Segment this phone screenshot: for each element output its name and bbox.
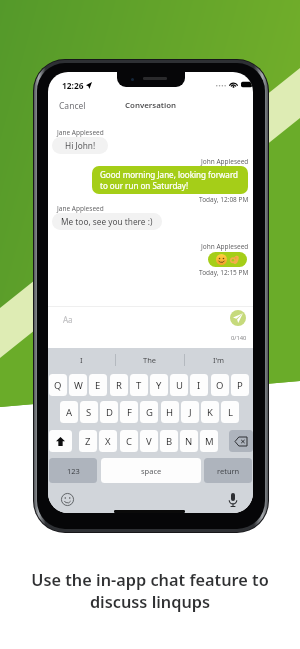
staticText: I [197, 379, 201, 392]
staticText: Conversation [125, 100, 177, 111]
staticText: N [185, 435, 193, 448]
button[interactable]: M [200, 430, 218, 452]
staticText: M [205, 435, 214, 448]
button[interactable]: Cancel [54, 97, 91, 115]
staticText: S [86, 406, 92, 419]
staticText: John Appleseed [201, 157, 249, 166]
button[interactable]: Z [79, 430, 97, 452]
staticText: Q [54, 379, 62, 392]
staticText: X [105, 435, 111, 448]
staticText: A [66, 406, 73, 419]
button[interactable]: L [221, 401, 239, 423]
button[interactable]: space [101, 458, 201, 483]
button[interactable]: R [110, 374, 128, 396]
staticText: R [116, 379, 122, 392]
staticText: Today, 12:08 PM [199, 195, 249, 204]
button[interactable]: O [211, 374, 229, 396]
staticText: 12:26 [62, 80, 84, 91]
staticText: Cancel [59, 100, 86, 112]
button[interactable]: K [201, 401, 219, 423]
staticText: E [95, 379, 101, 392]
staticText: The [143, 355, 157, 365]
staticText: I'm [213, 355, 225, 365]
staticText: V [146, 435, 152, 448]
button[interactable]: Good morning Jane, looking forward to ou… [92, 166, 248, 194]
staticText: T [136, 379, 142, 392]
staticText: J [189, 406, 192, 419]
button[interactable]: C [120, 430, 138, 452]
button[interactable]: N [180, 430, 198, 452]
button[interactable]: Dictation [228, 493, 238, 507]
staticText: Jane Appleseed [57, 204, 104, 213]
button[interactable]: T [130, 374, 148, 396]
staticText: D [106, 406, 113, 419]
button[interactable]: P [231, 374, 249, 396]
button[interactable]: Send [230, 310, 246, 326]
button[interactable]: Me too, see you there :) [52, 213, 162, 230]
staticText: C [126, 435, 133, 448]
button[interactable]: W [69, 374, 87, 396]
staticText: Hi John! [65, 140, 96, 151]
staticText: I [80, 355, 83, 365]
staticText: return [217, 466, 240, 476]
staticText: Y [156, 379, 162, 392]
staticText: U [176, 379, 183, 392]
button[interactable]: B [160, 430, 178, 452]
staticText: Aa [63, 314, 73, 325]
staticText: O [216, 379, 224, 392]
button[interactable]: E [89, 374, 107, 396]
button[interactable]: U [170, 374, 188, 396]
staticText: Z [85, 435, 91, 448]
staticText: space [141, 466, 162, 476]
button[interactable]: I [190, 374, 208, 396]
staticText: W [74, 379, 83, 392]
staticText: 123 [67, 466, 80, 476]
button[interactable]: H [161, 401, 179, 423]
staticText: Use the in-app chat feature to discuss l… [31, 569, 269, 613]
button[interactable]: D [100, 401, 118, 423]
button[interactable]: I [48, 348, 115, 371]
staticText: P [237, 379, 243, 392]
button[interactable]: 123 [49, 458, 97, 483]
button[interactable]: Emoji keyboard [61, 493, 74, 506]
button[interactable]: Backspace [229, 430, 253, 452]
staticText: John Appleseed [201, 242, 249, 251]
staticText: K [207, 406, 213, 419]
button[interactable]: J [181, 401, 199, 423]
button[interactable]: V [140, 430, 158, 452]
staticText: H [166, 406, 174, 419]
staticText: B [166, 435, 173, 448]
button[interactable]: Y [150, 374, 168, 396]
button[interactable]: return [204, 458, 252, 483]
button[interactable]: I'm [185, 348, 253, 371]
button[interactable] [208, 252, 247, 267]
button[interactable]: G [140, 401, 158, 423]
staticText: 0/140 [231, 334, 247, 342]
button[interactable]: A [60, 401, 78, 423]
staticText: Today, 12:15 PM [199, 268, 249, 277]
button[interactable]: F [120, 401, 138, 423]
button[interactable]: The [116, 348, 184, 371]
staticText: Me too, see you there :) [61, 216, 153, 227]
staticText: L [228, 406, 233, 419]
button[interactable]: S [80, 401, 98, 423]
staticText: Jane Appleseed [57, 128, 104, 137]
staticText: G [146, 406, 153, 419]
button[interactable]: X [99, 430, 117, 452]
staticText: F [127, 406, 132, 419]
button[interactable]: Q [49, 374, 67, 396]
staticText: Good morning Jane, looking forward to ou… [100, 169, 238, 191]
button[interactable]: Hi John! [52, 137, 108, 154]
button[interactable]: Shift [49, 430, 72, 452]
